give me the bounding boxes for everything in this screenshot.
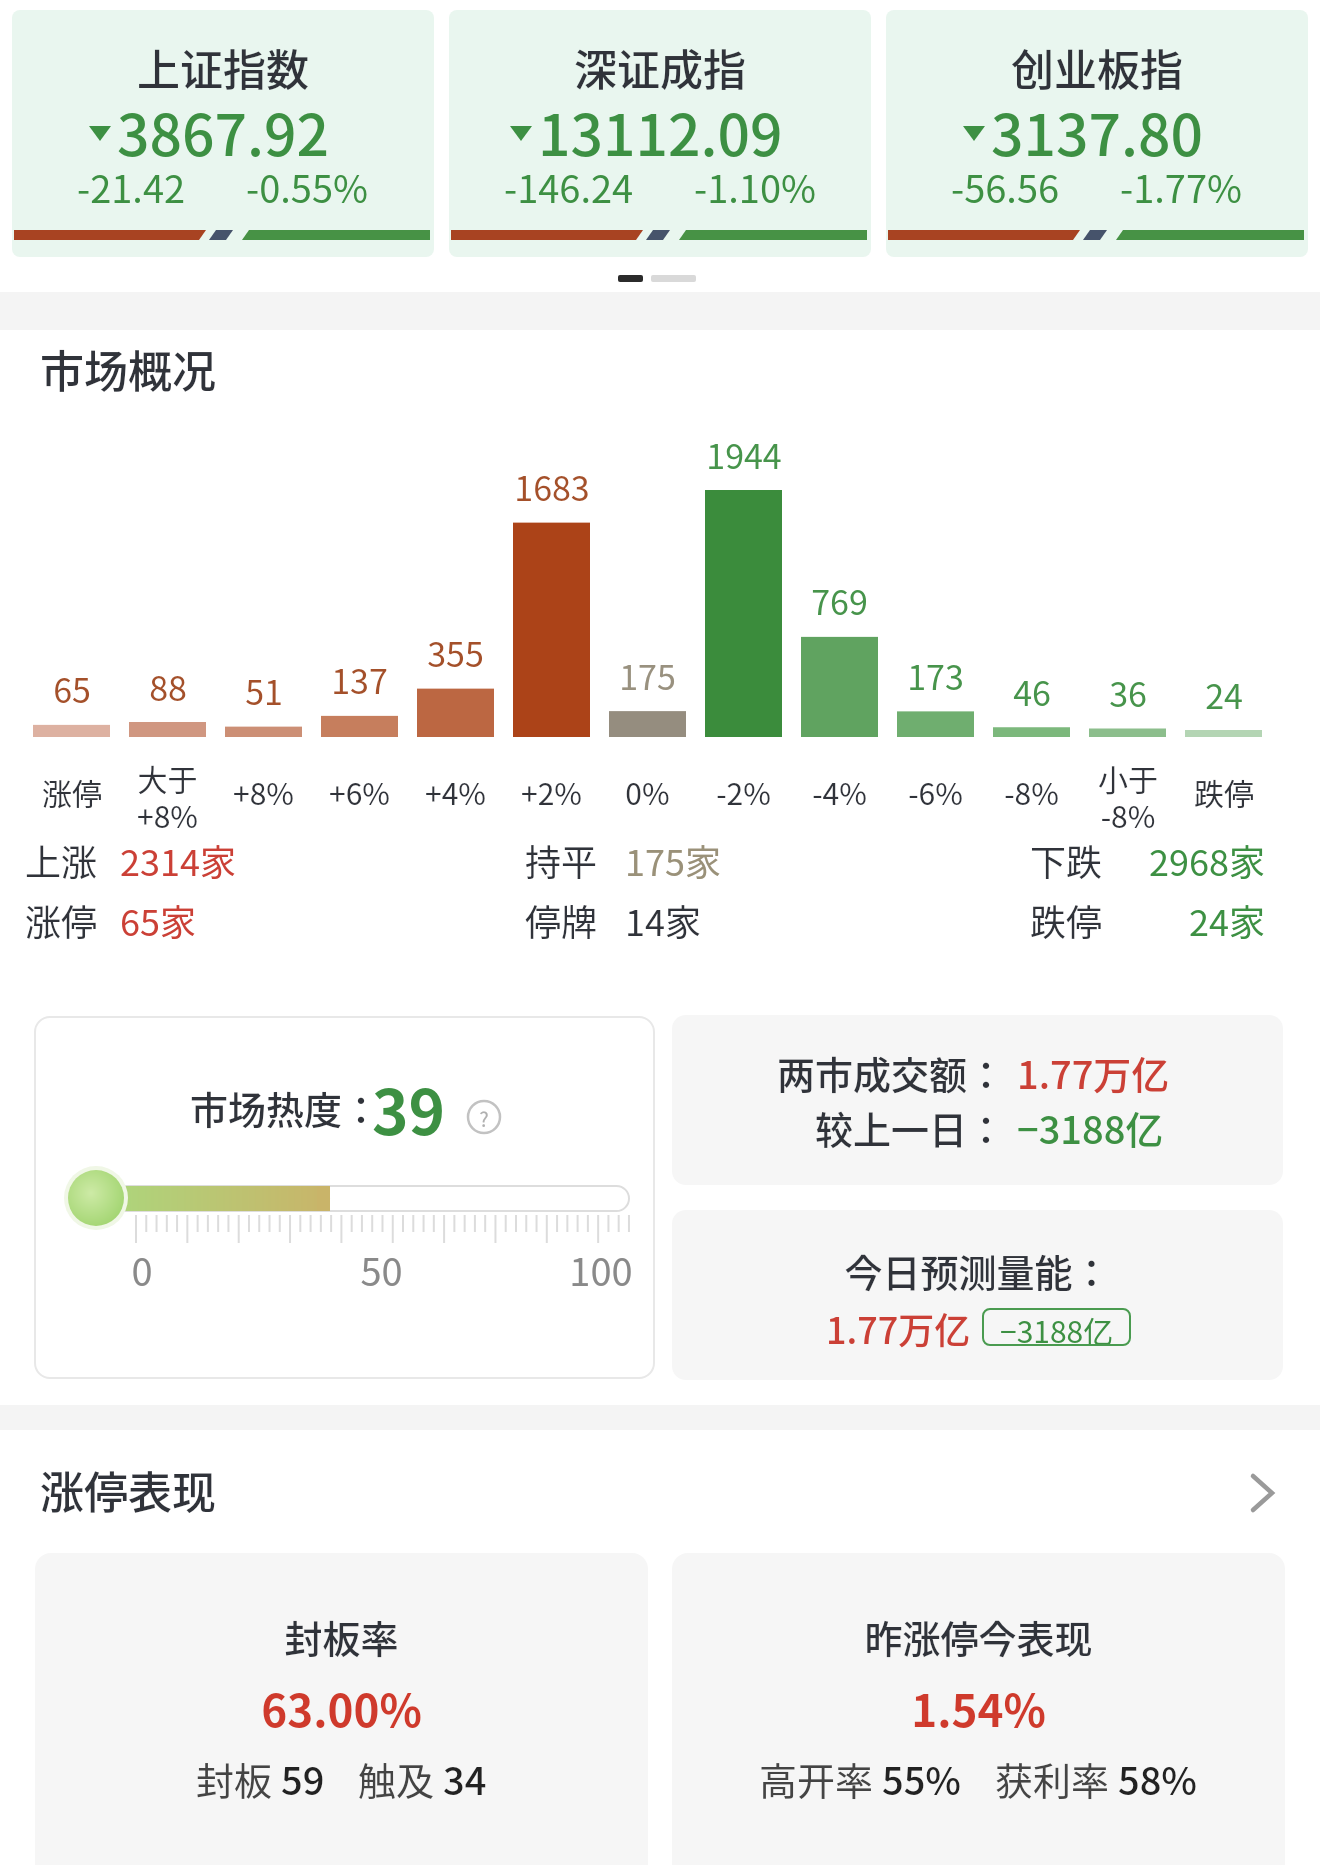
staticText: +2%	[521, 770, 582, 813]
staticText: 封板率	[284, 1609, 399, 1664]
staticText: -56.56	[951, 159, 1060, 214]
staticText: 58%	[1118, 1751, 1198, 1806]
staticText: 高开率	[759, 1751, 882, 1806]
button[interactable]	[35, 1553, 648, 1865]
staticText: 24家	[1189, 894, 1265, 946]
button[interactable]: 涨停表现	[0, 1440, 1320, 1520]
staticText: 跌停	[1194, 770, 1254, 813]
button[interactable]: 创业板指	[886, 10, 1308, 257]
staticText: 3137.80	[991, 90, 1203, 173]
button[interactable]: 上证指数	[12, 10, 434, 257]
staticText: 13112.09	[538, 90, 783, 173]
staticText: −3188亿	[1017, 1100, 1164, 1155]
staticText: ?	[479, 1104, 489, 1133]
staticText: 175	[619, 651, 676, 700]
staticText: 100	[569, 1242, 633, 1297]
staticText: 市场热度：	[190, 1080, 381, 1135]
button[interactable]	[672, 1210, 1283, 1380]
staticText: 355	[427, 628, 484, 677]
button[interactable]	[672, 1015, 1283, 1185]
staticText: 涨停	[25, 894, 98, 946]
staticText: 46	[1013, 667, 1051, 716]
staticText: 14家	[625, 894, 701, 946]
staticText: 65家	[120, 894, 196, 946]
staticText: 今日预测量能：	[844, 1243, 1111, 1298]
staticText: 2314家	[120, 834, 236, 886]
staticText: 59	[281, 1751, 325, 1806]
staticText: 63.00%	[261, 1676, 422, 1740]
staticText: 获利率	[995, 1751, 1118, 1806]
staticText: 涨停表现	[40, 1458, 216, 1522]
staticText: 65	[53, 664, 91, 713]
staticText: +6%	[329, 770, 390, 813]
staticText: 市场概况	[40, 337, 216, 401]
staticText: 1.77万亿	[1017, 1045, 1170, 1100]
staticText: 停牌	[525, 894, 598, 946]
button[interactable]: 深证成指	[449, 10, 871, 257]
staticText: -1.77%	[1120, 159, 1243, 214]
staticText: 昨涨停今表现	[864, 1609, 1093, 1664]
staticText: 173	[907, 651, 964, 700]
staticText: 0	[131, 1242, 153, 1297]
staticText: -4%	[812, 770, 867, 813]
staticText: 55%	[882, 1751, 962, 1806]
staticText: 24	[1205, 670, 1243, 719]
staticText: 下跌	[1030, 834, 1103, 886]
staticText: +4%	[425, 770, 486, 813]
staticText: 1.54%	[911, 1676, 1046, 1740]
staticText: -8%	[1004, 770, 1059, 813]
staticText: 2968家	[1149, 834, 1265, 886]
staticText: -146.24	[504, 159, 634, 214]
staticText: -1.10%	[694, 159, 817, 214]
staticText: -0.55%	[246, 159, 369, 214]
staticText: 175家	[625, 834, 721, 886]
staticText: 跌停	[1030, 894, 1103, 946]
staticText: 1.77万亿	[826, 1302, 971, 1354]
staticText: -6%	[908, 770, 963, 813]
staticText: 两市成交额：	[776, 1045, 1005, 1100]
staticText: 1944	[706, 430, 782, 479]
staticText: 持平	[525, 834, 598, 886]
staticText: 封板	[196, 1751, 281, 1806]
staticText: 较上一日：	[814, 1100, 1005, 1155]
staticText: 0%	[625, 770, 670, 813]
staticText: -21.42	[77, 159, 186, 214]
staticText: 769	[811, 576, 868, 625]
staticText: 137	[331, 655, 388, 704]
button[interactable]	[672, 1553, 1285, 1865]
staticText: 上涨	[25, 834, 98, 886]
staticText: −3188亿	[1000, 1308, 1114, 1346]
staticText: 涨停	[42, 770, 102, 813]
staticText: 88	[149, 662, 187, 711]
staticText: 1683	[514, 462, 590, 511]
button[interactable]	[34, 1016, 655, 1379]
staticText: 50	[360, 1242, 403, 1297]
staticText: 39	[372, 1063, 446, 1153]
staticText: +8%	[233, 770, 294, 813]
staticText: 小于 -8%	[1098, 756, 1158, 836]
staticText: 51	[245, 666, 283, 715]
staticText: 创业板指	[1011, 36, 1183, 98]
staticText: 34	[443, 1751, 487, 1806]
staticText: -2%	[716, 770, 771, 813]
staticText: 上证指数	[137, 36, 309, 98]
staticText: 触及	[358, 1751, 443, 1806]
staticText: 大于 +8%	[137, 756, 198, 836]
staticText: 3867.92	[117, 90, 329, 173]
staticText: 深证成指	[574, 36, 746, 98]
staticText: 36	[1109, 668, 1147, 717]
